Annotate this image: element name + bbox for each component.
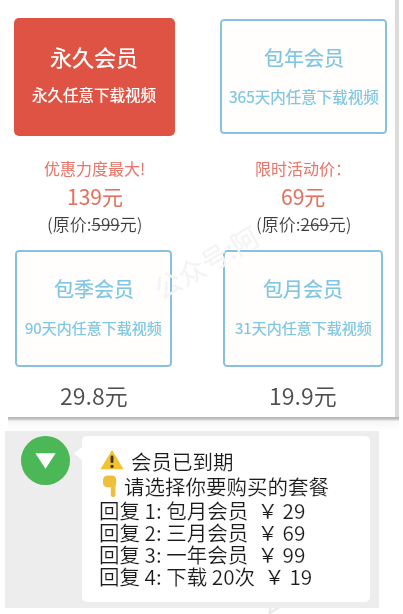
button[interactable]: 包年会员 xyxy=(220,19,387,134)
staticText: 回复 1: 包月会员 ￥ 29 xyxy=(99,495,306,525)
staticText: 回复 2: 三月会员 ￥ 69 xyxy=(99,517,306,547)
staticText: 90天内任意下载视频 xyxy=(25,317,162,339)
staticText: 69元 xyxy=(281,181,326,211)
staticText: 29.8元 xyxy=(60,378,128,411)
staticText: 139元 xyxy=(67,181,123,211)
staticText: 回复 4: 下载 20次 ￥ 19 xyxy=(99,561,313,591)
button[interactable]: 包季会员 xyxy=(15,250,172,367)
staticText: 公众号:阿 xyxy=(253,543,360,614)
staticText: 包年会员 xyxy=(264,43,344,72)
staticText: 永久会员 xyxy=(50,40,139,72)
staticText: 公众号:阿 xyxy=(146,216,266,307)
staticText: (原价:269元) xyxy=(256,211,352,236)
staticText: 19.9元 xyxy=(269,378,337,411)
staticText: 永久任意下载视频 xyxy=(32,83,157,105)
button[interactable]: 永久会员 xyxy=(14,18,175,136)
staticText: 限时活动价： xyxy=(255,156,352,179)
staticText: 回复 3: 一年会员 ￥ 99 xyxy=(99,539,306,569)
staticText: 会员已到期 xyxy=(131,446,234,476)
staticText: 365天内任意下载视频 xyxy=(229,85,379,107)
button[interactable]: Contact avatar xyxy=(21,436,70,485)
button[interactable]: 包月会员 xyxy=(223,250,383,367)
staticText: 优惠力度最大! xyxy=(44,156,146,179)
staticText: 请选择你要购买的套餐 xyxy=(124,471,329,501)
staticText: (原价:599元) xyxy=(47,211,143,236)
staticText: 31天内任意下载视频 xyxy=(235,317,372,339)
staticText: 包季会员 xyxy=(54,274,134,303)
staticText: 包月会员 xyxy=(263,274,343,303)
